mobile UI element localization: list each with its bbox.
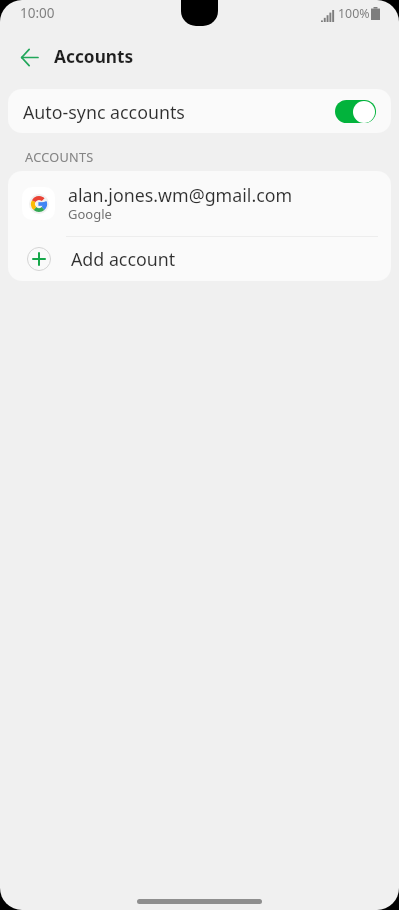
button[interactable]: Add account — [8, 237, 391, 281]
button[interactable]: Auto-sync accounts — [8, 89, 391, 133]
staticText: Add account — [71, 247, 176, 271]
staticText: 100% — [338, 5, 370, 22]
staticText: 10:00 — [20, 4, 55, 22]
staticText: ACCOUNTS — [25, 148, 94, 165]
staticText: Google — [68, 205, 112, 223]
staticText: Auto-sync accounts — [23, 100, 185, 124]
button[interactable]: Back — [9, 37, 50, 78]
staticText: Accounts — [54, 45, 134, 69]
staticText: alan.jones.wm@gmail.com — [68, 183, 293, 207]
button[interactable]: alan.jones.wm@gmail.com — [8, 171, 391, 236]
